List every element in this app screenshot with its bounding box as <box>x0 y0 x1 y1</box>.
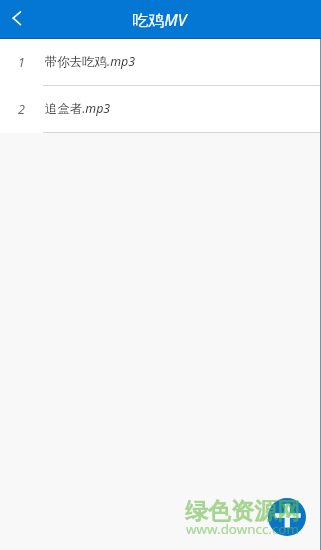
button[interactable]: 2 <box>0 86 321 133</box>
staticText: 1 <box>18 54 25 71</box>
staticText: 2 <box>18 101 25 118</box>
staticText: 吃鸡MV <box>132 9 187 31</box>
button[interactable]: Back <box>0 0 36 39</box>
staticText: 追盒者.mp3 <box>45 100 111 117</box>
staticText: 绿色资源网 <box>185 497 300 526</box>
staticText: www.downcc.com <box>268 520 299 536</box>
button[interactable]: 1 <box>0 39 321 86</box>
staticText: 绿色资源网 <box>268 498 300 526</box>
staticText: 带你去吃鸡.mp3 <box>45 53 135 70</box>
staticText: www.downcc.com <box>186 520 299 538</box>
